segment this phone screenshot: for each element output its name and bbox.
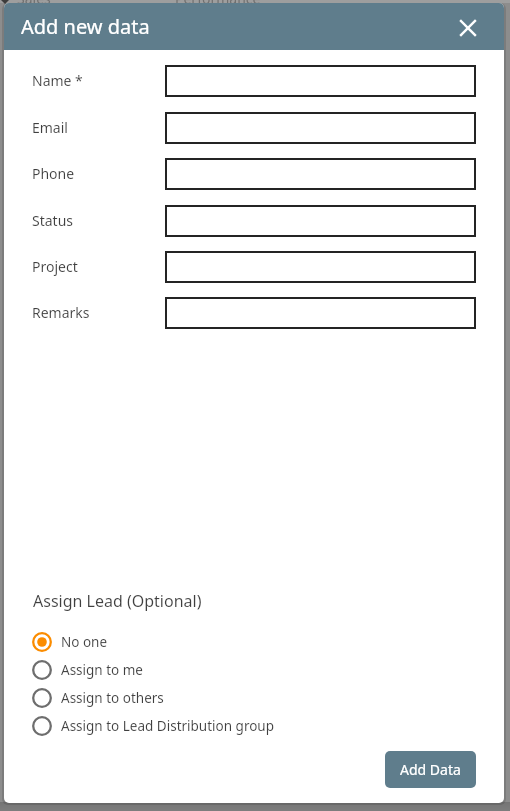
button[interactable] — [165, 158, 476, 190]
staticText: Sales — [17, 0, 51, 8]
button[interactable]: No one — [4, 628, 504, 656]
staticText: Assign to others — [61, 689, 164, 707]
staticText: Add new data — [21, 13, 150, 40]
staticText: Assign to Lead Distribution group — [61, 717, 275, 735]
button[interactable] — [165, 112, 476, 144]
staticText: Assign to me — [61, 661, 143, 679]
button[interactable]: Close — [454, 14, 482, 42]
button[interactable]: Add Data — [385, 751, 476, 788]
staticText: Email — [32, 118, 68, 137]
staticText: Name * — [32, 71, 83, 90]
button[interactable] — [165, 65, 476, 97]
staticText: Remarks — [32, 303, 90, 322]
button[interactable]: Assign to Lead Distribution group — [4, 712, 504, 740]
staticText: Assign Lead (Optional) — [33, 590, 202, 612]
staticText: Phone — [32, 164, 75, 183]
button[interactable] — [165, 297, 476, 329]
staticText: Performance — [175, 0, 261, 8]
staticText: No one — [61, 633, 108, 651]
button[interactable]: Assign to others — [4, 684, 504, 712]
button[interactable] — [165, 205, 476, 237]
button[interactable] — [165, 251, 476, 283]
staticText: Status — [32, 211, 74, 230]
button[interactable]: Assign to me — [4, 656, 504, 684]
staticText: Add Data — [400, 760, 461, 779]
staticText: Project — [32, 257, 78, 276]
